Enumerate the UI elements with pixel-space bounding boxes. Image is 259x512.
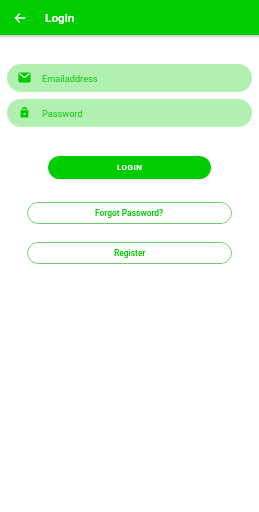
button[interactable]: Password [7,99,252,127]
button[interactable]: Forgot Password? [27,202,232,224]
button[interactable]: Emailaddress [7,64,252,92]
staticText: Login [45,11,75,25]
button[interactable]: Register [27,242,232,264]
staticText: Emailaddress [42,73,98,84]
button[interactable]: LOGIN [48,156,211,179]
staticText: LOGIN [117,163,143,172]
button[interactable]: Back [4,2,36,34]
staticText: Password [42,108,83,119]
staticText: Forgot Password? [95,208,164,218]
staticText: Register [114,248,146,258]
